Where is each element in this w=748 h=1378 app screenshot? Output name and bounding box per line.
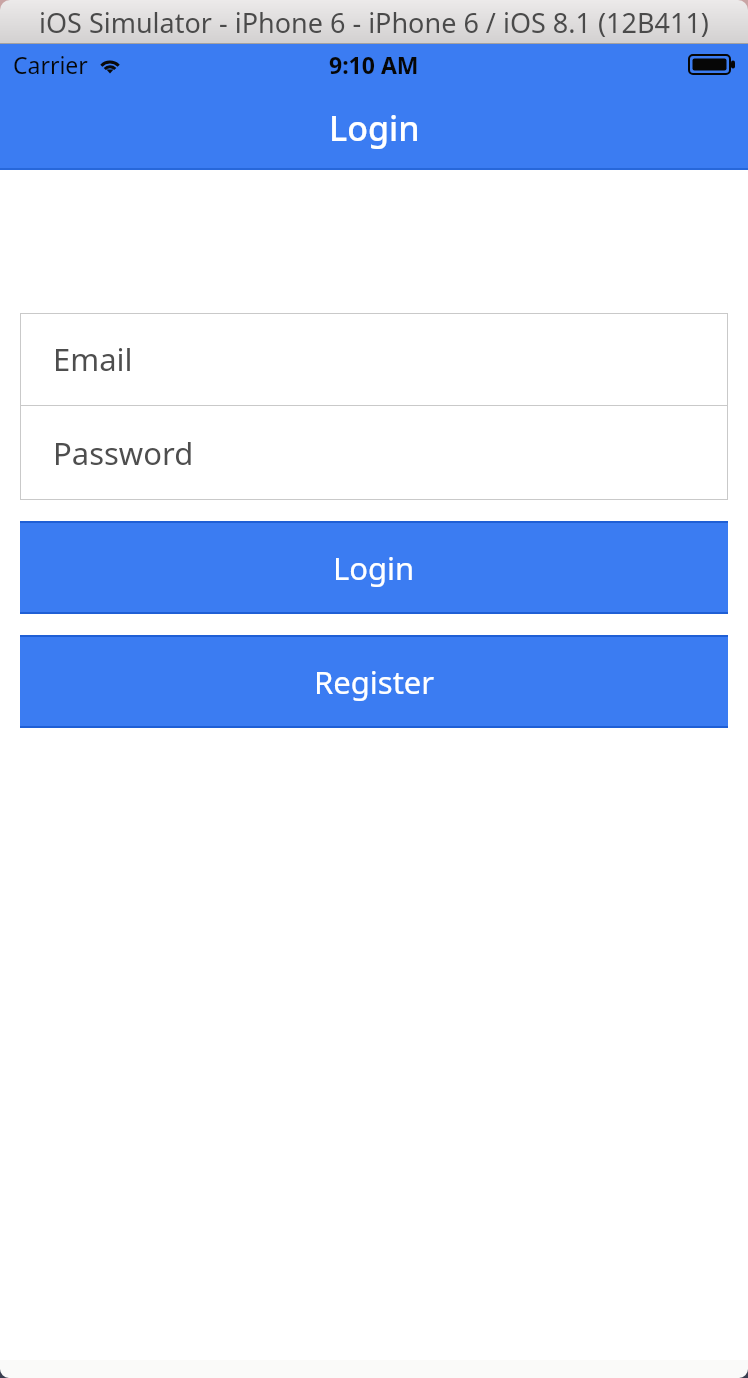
button[interactable]: Email (20, 313, 728, 405)
staticText: Carrier (13, 49, 88, 80)
staticText: Password (53, 432, 194, 474)
staticText: Login (329, 105, 420, 151)
button[interactable]: Login (20, 521, 728, 614)
staticText: Email (53, 338, 133, 380)
button[interactable]: Register (20, 635, 728, 728)
staticText: Login (333, 547, 415, 589)
staticText: Register (314, 661, 435, 703)
staticText: 9:10 AM (329, 49, 419, 80)
staticText: iOS Simulator - iPhone 6 - iPhone 6 / iO… (39, 4, 709, 41)
button[interactable]: Password (20, 406, 728, 500)
